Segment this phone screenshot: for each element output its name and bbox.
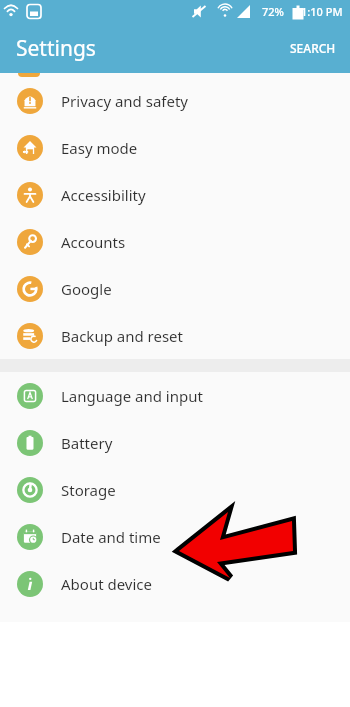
button[interactable]: Accessibility	[0, 171, 350, 218]
other: Storage	[17, 477, 43, 503]
button[interactable]: Privacy and safety	[0, 77, 350, 124]
staticText: Storage	[61, 480, 116, 500]
staticText: About device	[61, 574, 153, 594]
staticText: Settings	[16, 34, 96, 63]
staticText: 72%	[262, 4, 284, 19]
button[interactable]: Backup and reset	[0, 312, 350, 359]
other: Backup and reset	[17, 323, 43, 349]
staticText: Privacy and safety	[61, 91, 189, 111]
button[interactable]: Language and input	[0, 372, 350, 419]
other: Privacy and safety	[17, 88, 43, 114]
button[interactable]: About device	[0, 560, 350, 607]
button[interactable]: Google	[0, 265, 350, 312]
staticText: Accounts	[61, 232, 126, 252]
staticText: Date and time	[61, 527, 161, 547]
other: Date and time	[17, 524, 43, 550]
other: Google	[17, 276, 43, 302]
staticText: Accessibility	[61, 185, 146, 205]
staticText: Battery	[61, 433, 113, 453]
button[interactable]: Easy mode	[0, 124, 350, 171]
staticText: 1:10 PM	[301, 4, 343, 19]
other: Accessibility	[17, 182, 43, 208]
other: Battery	[17, 430, 43, 456]
staticText: Easy mode	[61, 138, 138, 158]
staticText: SEARCH	[290, 40, 336, 56]
button[interactable]: Accounts	[0, 218, 350, 265]
staticText: Language and input	[61, 386, 203, 406]
button[interactable]: Storage	[0, 466, 350, 513]
button[interactable]: Date and time	[0, 513, 350, 560]
other: Accounts	[17, 229, 43, 255]
button[interactable]: SEARCH	[276, 28, 350, 68]
button[interactable]: Battery	[0, 419, 350, 466]
staticText: Google	[61, 279, 112, 299]
staticText: Backup and reset	[61, 326, 183, 346]
other: Easy mode	[17, 135, 43, 161]
other: Language and input	[17, 383, 43, 409]
other: About device	[17, 571, 43, 597]
